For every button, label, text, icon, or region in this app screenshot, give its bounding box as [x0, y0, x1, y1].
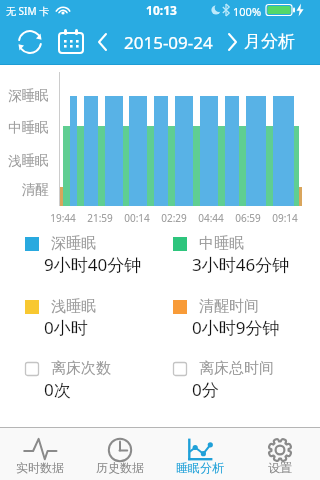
staticText: 清醒	[22, 181, 49, 198]
staticText: 2015-09-24	[124, 31, 213, 54]
staticText: 21:59	[87, 211, 113, 225]
staticText: 清醒时间	[199, 297, 259, 316]
button[interactable]	[14, 24, 50, 60]
staticText: 浅睡眠	[51, 297, 96, 316]
staticText: 04:44	[198, 211, 224, 225]
button[interactable]: 睡眠分析	[160, 427, 240, 480]
staticText: 9小时40分钟	[44, 253, 142, 276]
button[interactable]: 浅睡眠	[25, 300, 157, 358]
staticText: 00:14	[124, 211, 150, 225]
staticText: 0次	[44, 378, 71, 401]
staticText: 3小时46分钟	[192, 253, 290, 276]
staticText: 中睡眠	[8, 119, 49, 136]
staticText: 实时数据	[16, 460, 64, 475]
button[interactable]: 历史数据	[80, 427, 160, 480]
staticText: 0小时9分钟	[192, 316, 280, 339]
staticText: 10:13	[146, 2, 177, 18]
staticText: 100%	[233, 4, 262, 19]
staticText: 深睡眠	[51, 234, 96, 253]
button[interactable]: 离床次数	[25, 362, 157, 420]
staticText: 历史数据	[96, 460, 144, 475]
staticText: 02:29	[161, 211, 187, 225]
staticText: 离床次数	[51, 359, 111, 378]
staticText: 浅睡眠	[8, 152, 49, 169]
button[interactable]	[54, 24, 90, 60]
button[interactable]: 离床总时间	[173, 362, 305, 420]
staticText: 睡眠分析	[176, 460, 224, 475]
staticText: 离床总时间	[199, 359, 274, 378]
button[interactable]	[224, 24, 250, 60]
button[interactable]: 实时数据	[0, 427, 80, 480]
button[interactable]: 清醒时间	[173, 300, 305, 358]
staticText: 19:44	[50, 211, 76, 225]
button[interactable]: 深睡眠	[25, 237, 157, 295]
button[interactable]: 设置	[240, 427, 320, 480]
staticText: 0小时	[44, 316, 88, 339]
staticText: 中睡眠	[199, 234, 244, 253]
staticText: 月分析	[244, 31, 295, 52]
staticText: 深睡眠	[8, 87, 49, 104]
button[interactable]: 中睡眠	[173, 237, 305, 295]
staticText: 设置	[268, 460, 292, 475]
staticText: 无 SIM 卡	[6, 4, 50, 18]
staticText: 0分	[192, 378, 219, 401]
staticText: 09:14	[272, 211, 298, 225]
staticText: 06:59	[235, 211, 261, 225]
button[interactable]	[92, 24, 118, 60]
